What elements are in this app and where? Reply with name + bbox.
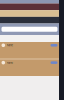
staticText: Name <box>7 61 14 64</box>
staticText: Name <box>7 43 14 47</box>
